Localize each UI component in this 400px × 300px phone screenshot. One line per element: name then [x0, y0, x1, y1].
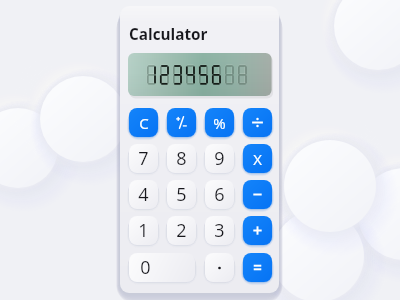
staticText: 3 [214, 218, 225, 243]
button[interactable]: 8 [167, 144, 196, 173]
staticText: 6 [214, 182, 225, 207]
staticText: C [139, 113, 149, 133]
staticText: 8 [176, 146, 187, 171]
button[interactable]: % [205, 108, 234, 137]
staticText: 9 [214, 146, 225, 171]
button[interactable]: 3 [205, 216, 234, 245]
staticText: 0 [140, 255, 151, 280]
button[interactable]: 5 [167, 180, 196, 209]
staticText: 2 [176, 218, 187, 243]
button[interactable]: 6 [205, 180, 234, 209]
button[interactable]: 4 [129, 180, 158, 209]
button[interactable]: 2 [167, 216, 196, 245]
button[interactable]: Plus [243, 216, 272, 245]
staticText: 1 [138, 218, 149, 243]
staticText: Calculator [129, 24, 208, 45]
button[interactable]: Divide [243, 108, 272, 137]
button[interactable]: C [129, 108, 158, 137]
button[interactable]: 9 [205, 144, 234, 173]
staticText: 4 [138, 182, 149, 207]
button[interactable]: 7 [129, 144, 158, 173]
button[interactable]: Toggle sign [167, 108, 196, 137]
staticText: 7 [138, 146, 149, 171]
button[interactable] [205, 253, 234, 282]
button[interactable]: 1 [129, 216, 158, 245]
button[interactable]: Equals [243, 253, 272, 282]
button[interactable]: X [243, 144, 272, 173]
staticText: X [253, 149, 262, 169]
staticText: % [213, 113, 226, 133]
button[interactable]: Minus [243, 180, 272, 209]
button[interactable]: 0 [129, 253, 195, 282]
staticText: 5 [176, 182, 187, 207]
